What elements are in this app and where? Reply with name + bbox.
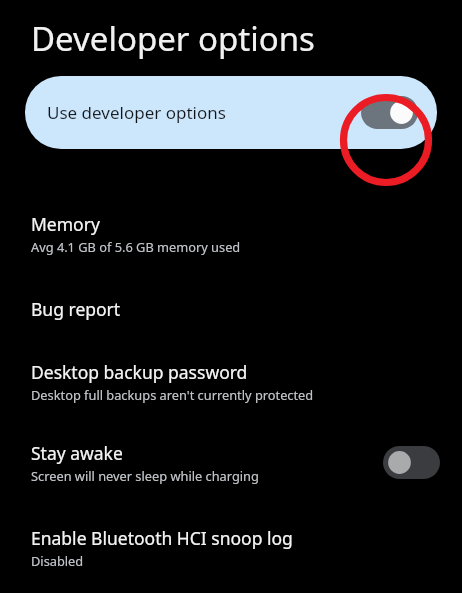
button[interactable]: Bug report bbox=[0, 297, 462, 321]
staticText: Desktop backup password bbox=[31, 360, 248, 384]
staticText: Disabled bbox=[31, 552, 84, 569]
staticText: Memory bbox=[31, 212, 100, 236]
staticText: Desktop full backups aren't currently pr… bbox=[31, 386, 314, 403]
button[interactable]: Use developer options bbox=[25, 76, 437, 149]
staticText: Avg 4.1 GB of 5.6 GB memory used bbox=[31, 238, 241, 255]
staticText: Stay awake bbox=[31, 441, 123, 465]
button[interactable]: Memory bbox=[0, 212, 462, 255]
staticText: Developer options bbox=[31, 16, 315, 61]
staticText: Enable Bluetooth HCI snoop log bbox=[31, 526, 293, 550]
button[interactable]: Toggle off bbox=[383, 446, 440, 479]
button[interactable]: Stay awake bbox=[0, 441, 462, 484]
staticText: Screen will never sleep while charging bbox=[31, 467, 259, 484]
button[interactable]: Desktop backup password bbox=[0, 360, 462, 403]
staticText: Use developer options bbox=[47, 101, 226, 124]
staticText: Bug report bbox=[31, 297, 121, 321]
button[interactable]: Enable Bluetooth HCI snoop log bbox=[0, 526, 462, 569]
button[interactable]: Toggle on bbox=[361, 96, 418, 129]
